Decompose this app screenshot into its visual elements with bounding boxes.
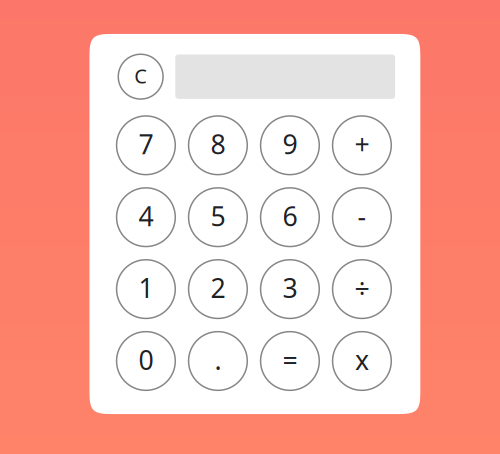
- button[interactable]: 3: [261, 260, 319, 318]
- staticText: 7: [138, 126, 153, 162]
- button[interactable]: 7: [117, 116, 175, 175]
- staticText: ÷: [354, 270, 369, 305]
- staticText: x: [355, 342, 369, 377]
- button[interactable]: 2: [189, 260, 247, 318]
- staticText: 3: [282, 270, 297, 305]
- button[interactable]: ÷: [333, 260, 391, 318]
- staticText: 9: [282, 126, 297, 162]
- staticText: 8: [210, 126, 225, 162]
- staticText: =: [282, 342, 297, 377]
- button[interactable]: 1: [117, 260, 175, 318]
- staticText: +: [354, 126, 369, 162]
- button[interactable]: 9: [261, 116, 319, 175]
- button[interactable]: 6: [261, 188, 319, 247]
- staticText: 2: [210, 270, 225, 305]
- staticText: 1: [138, 270, 153, 305]
- button[interactable]: 8: [189, 116, 247, 175]
- button[interactable]: +: [333, 116, 391, 175]
- staticText: C: [134, 62, 147, 89]
- staticText: 6: [282, 198, 297, 233]
- button[interactable]: -: [333, 188, 391, 247]
- button[interactable]: x: [333, 332, 391, 390]
- staticText: .: [214, 342, 221, 377]
- button[interactable]: 4: [117, 188, 175, 247]
- staticText: -: [357, 198, 366, 233]
- button[interactable]: .: [189, 332, 247, 390]
- button[interactable]: C: [118, 54, 163, 99]
- button[interactable]: =: [261, 332, 319, 390]
- staticText: 5: [210, 198, 225, 233]
- button[interactable]: 0: [117, 332, 175, 390]
- staticText: 4: [138, 198, 153, 233]
- staticText: 0: [138, 342, 153, 377]
- button[interactable]: 5: [189, 188, 247, 247]
